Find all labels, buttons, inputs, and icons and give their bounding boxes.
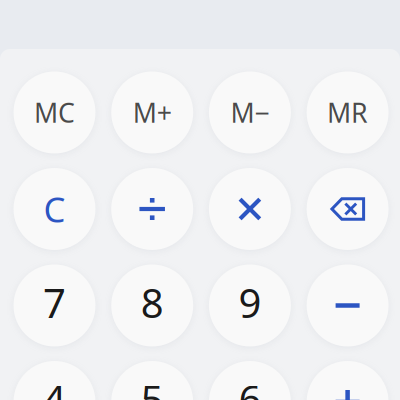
staticText: 8 <box>141 276 164 329</box>
staticText: 7 <box>43 276 66 329</box>
button[interactable]: 6 <box>209 361 291 400</box>
button[interactable]: 9 <box>209 264 291 346</box>
button[interactable]: 4 <box>13 361 95 400</box>
staticText: M− <box>230 95 269 130</box>
button[interactable]: MR <box>307 71 389 153</box>
staticText: MC <box>34 95 75 130</box>
staticText: 9 <box>238 276 261 329</box>
button[interactable]: 5 <box>111 361 193 400</box>
staticText: M+ <box>133 95 172 130</box>
button[interactable]: 8 <box>111 264 193 346</box>
staticText: 4 <box>43 372 66 400</box>
staticText: MR <box>327 95 368 130</box>
button[interactable]: Minus <box>307 264 389 346</box>
button[interactable]: Divide <box>111 168 193 250</box>
button[interactable]: C <box>13 168 95 250</box>
staticText: 6 <box>238 372 261 400</box>
button[interactable]: MC <box>13 71 95 153</box>
button[interactable]: Delete <box>307 168 389 250</box>
button[interactable]: Multiply <box>209 168 291 250</box>
button[interactable]: Plus <box>307 361 389 400</box>
button[interactable]: M− <box>209 71 291 153</box>
staticText: 5 <box>141 372 164 400</box>
button[interactable]: 7 <box>13 264 95 346</box>
staticText: C <box>43 186 65 232</box>
button[interactable]: M+ <box>111 71 193 153</box>
